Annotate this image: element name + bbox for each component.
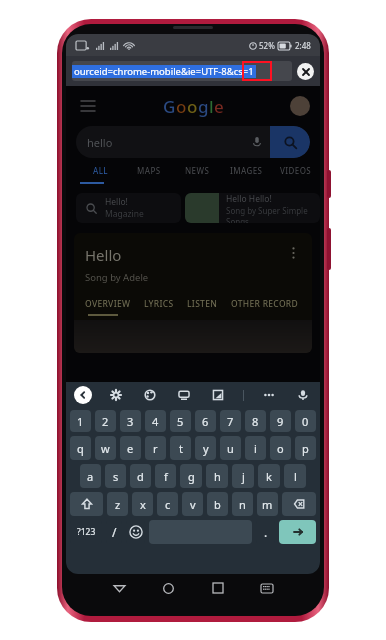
button[interactable]: z [107,492,128,516]
button[interactable]: hello [76,126,310,158]
staticText: OVERVIEW [85,298,131,310]
staticText: Hello! [105,196,128,208]
staticText: y [203,441,209,456]
button[interactable]: l [284,464,306,488]
staticText: LISTEN [187,298,218,310]
button[interactable]: f [155,464,176,488]
button[interactable]: Enter [279,520,316,544]
staticText: / [112,524,117,540]
button[interactable]: IMAGES [222,158,271,182]
staticText: . [264,524,268,540]
staticText: u [227,441,234,456]
button[interactable]: Account [290,96,310,116]
button[interactable]: w [95,436,116,460]
button[interactable]: MAPS [124,158,173,182]
button[interactable]: Search [270,126,310,158]
staticText: e [127,441,134,456]
staticText: 5 [177,414,184,429]
button[interactable]: Back [95,574,144,602]
button[interactable]: ALL [76,158,124,182]
button[interactable]: Voice input [294,386,312,404]
staticText: 7 [227,414,234,429]
button[interactable]: Emoji [126,520,145,544]
button[interactable]: g [180,464,202,488]
button[interactable]: 3 [120,410,141,432]
staticText: MAPS [137,165,161,176]
button[interactable]: Menu [78,96,98,116]
button[interactable]: Stickers [175,386,193,404]
button[interactable]: q [70,436,91,460]
staticText: OTHER RECORD [231,298,299,310]
button[interactable]: 0 [295,410,316,432]
button[interactable]: Clear [297,63,314,80]
button[interactable]: d [130,464,151,488]
staticText: k [266,469,272,484]
button[interactable]: 4 [145,410,166,432]
button[interactable]: Hello Hello! [185,193,320,223]
staticText: i [254,441,257,456]
button[interactable]: o [270,436,291,460]
staticText: m [262,497,273,512]
button[interactable]: OVERVIEW [85,298,144,310]
button[interactable]: ?123 [70,520,102,544]
button[interactable]: p [295,436,316,460]
button[interactable]: m [257,492,278,516]
staticText: NEWS [185,165,210,176]
button[interactable]: / [106,520,122,544]
button[interactable]: Back [74,386,92,404]
button[interactable]: b [207,492,228,516]
button[interactable]: i [245,436,266,460]
staticText: c [165,497,171,512]
button[interactable]: 6 [195,410,216,432]
button[interactable]: More options [285,245,301,261]
button[interactable]: t [170,436,191,460]
button[interactable]: 1 [70,410,91,432]
button[interactable]: e [120,436,141,460]
staticText: g [188,469,195,484]
button[interactable]: More [260,386,278,404]
button[interactable]: c [157,492,178,516]
button[interactable]: Themes [141,386,159,404]
button[interactable]: h [206,464,228,488]
button[interactable]: Settings [107,386,125,404]
button[interactable]: LISTEN [187,298,231,310]
button[interactable]: Home [144,574,193,602]
button[interactable]: r [145,436,166,460]
staticText: l [209,95,214,118]
button[interactable]: . [256,520,275,544]
staticText: hello [87,135,113,150]
button[interactable]: Hello! [76,193,181,223]
staticText: VIDEOS [280,165,312,176]
staticText: o [187,95,198,118]
button[interactable]: a [80,464,101,488]
button[interactable]: Hello [74,233,312,353]
button[interactable]: OTHER RECORD [231,298,312,310]
button[interactable]: LYRICS [144,298,187,310]
button[interactable]: 5 [170,410,191,432]
button[interactable]: j [232,464,254,488]
button[interactable]: Backspace [282,492,316,516]
button[interactable]: k [258,464,280,488]
button[interactable]: Hide keyboard [242,574,291,602]
staticText: q [77,441,84,456]
button[interactable]: y [195,436,216,460]
button[interactable]: u [220,436,241,460]
staticText: ?123 [77,526,96,538]
button[interactable]: ourceid=chrome-mobile&ie=UTF-8&cs=1 [72,61,292,81]
button[interactable]: Shift [70,492,103,516]
staticText: d [137,469,144,484]
button[interactable]: NEWS [173,158,222,182]
button[interactable]: 9 [270,410,291,432]
button[interactable]: 2 [95,410,116,432]
button[interactable]: 7 [220,410,241,432]
staticText: Magazine [105,208,144,220]
button[interactable]: Recents [193,574,242,602]
button[interactable]: x [132,492,153,516]
button[interactable]: n [232,492,253,516]
button[interactable]: VIDEOS [271,158,320,182]
button[interactable]: 8 [245,410,266,432]
button[interactable]: Clipboard [209,386,227,404]
button[interactable]: v [182,492,203,516]
button[interactable]: s [105,464,126,488]
